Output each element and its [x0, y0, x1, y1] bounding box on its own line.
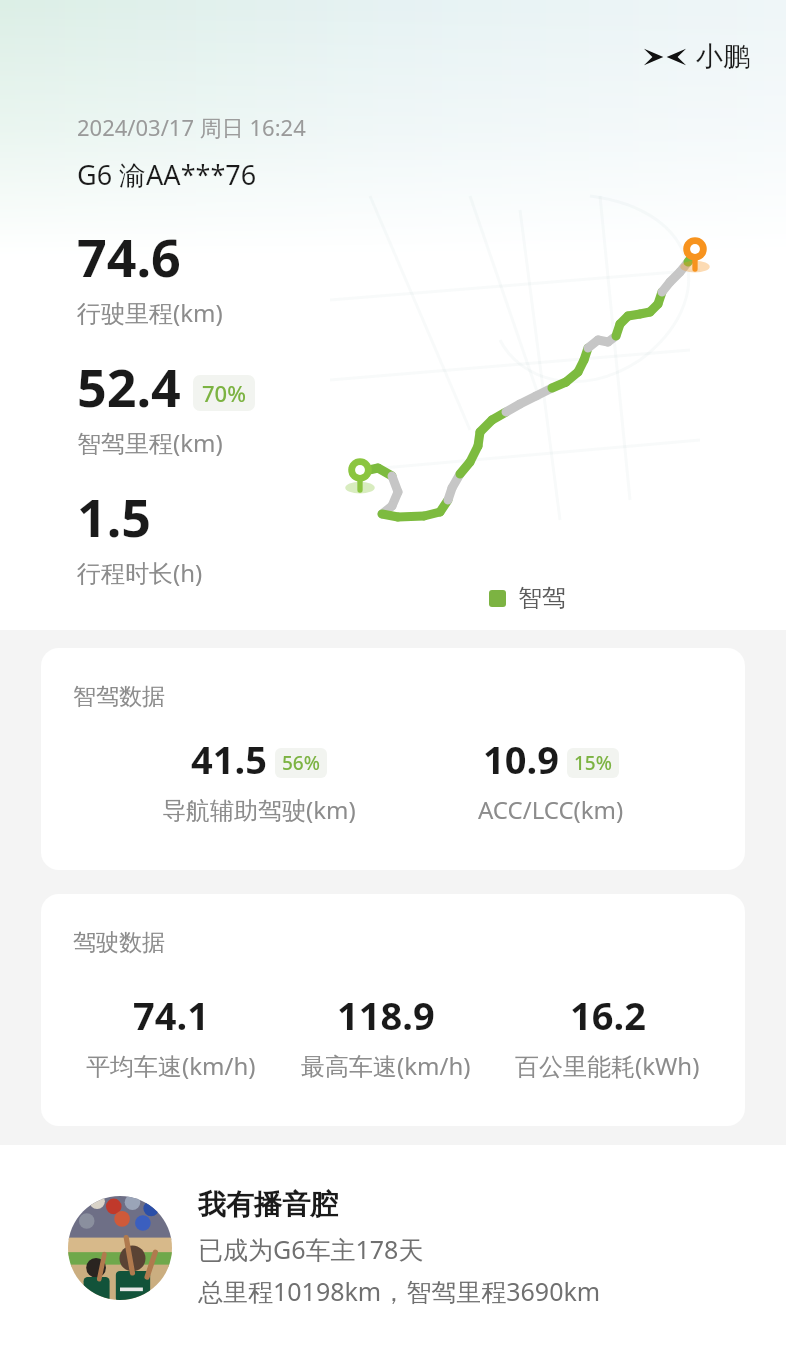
staticText: 智驾数据: [73, 682, 165, 711]
staticText: 智驾: [518, 583, 566, 613]
staticText: 16.2: [570, 989, 646, 1041]
staticText: 118.9: [337, 989, 435, 1041]
staticText: 导航辅助驾驶(km): [162, 793, 356, 826]
staticText: 15%: [574, 750, 612, 776]
staticText: 小鹏: [696, 40, 750, 74]
staticText: 总里程10198km，智驾里程3690km: [198, 1274, 601, 1308]
staticText: 1.5: [77, 481, 152, 552]
button[interactable]: XPeng: [644, 40, 750, 74]
staticText: 驾驶数据: [73, 928, 165, 957]
button[interactable]: 我有播音腔: [0, 1145, 786, 1346]
staticText: 已成为G6车主178天: [198, 1232, 424, 1266]
staticText: G6 渝AA***76: [77, 156, 257, 193]
staticText: 百公里能耗(kWh): [515, 1049, 700, 1082]
staticText: 我有播音腔: [198, 1187, 338, 1222]
staticText: 行驶里程(km): [77, 296, 223, 329]
staticText: 2024/03/17 周日 16:24: [77, 112, 306, 142]
staticText: 41.5: [191, 733, 267, 785]
button[interactable]: 智驾数据: [41, 648, 745, 870]
staticText: 70%: [202, 378, 246, 408]
staticText: 52.4: [77, 351, 181, 422]
staticText: 10.9: [483, 733, 559, 785]
staticText: 智驾里程(km): [77, 426, 223, 459]
staticText: 74.6: [77, 221, 181, 292]
staticText: 平均车速(km/h): [86, 1049, 256, 1082]
staticText: 56%: [282, 750, 320, 776]
staticText: ACC/LCC(km): [478, 793, 624, 826]
staticText: 最高车速(km/h): [301, 1049, 471, 1082]
button[interactable]: 驾驶数据: [41, 894, 745, 1126]
staticText: 行程时长(h): [77, 556, 203, 589]
staticText: 74.1: [133, 989, 209, 1041]
